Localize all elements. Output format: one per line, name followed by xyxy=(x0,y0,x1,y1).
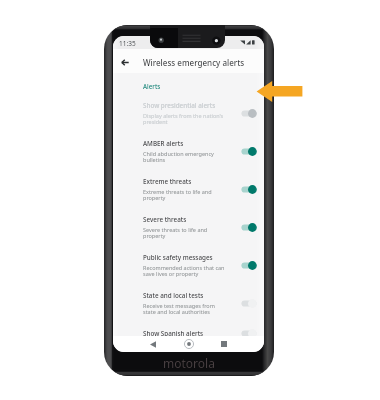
button[interactable]: Back xyxy=(144,336,161,352)
button[interactable]: Show Spanish alerts xyxy=(113,322,264,352)
button[interactable]: State and local tests xyxy=(113,284,264,322)
staticText: Severe threats to life and property xyxy=(143,226,208,240)
button[interactable]: Navigate up xyxy=(116,53,134,71)
staticText: AMBER alerts xyxy=(143,139,184,148)
staticText: Public safety messages xyxy=(143,253,213,262)
staticText: Extreme threats xyxy=(143,177,192,186)
button[interactable]: Severe threats xyxy=(113,208,264,246)
staticText: Alerts xyxy=(143,82,161,90)
staticText: Recommended actions that can save lives … xyxy=(143,264,225,278)
staticText: Wireless emergency alerts xyxy=(143,57,245,68)
staticText: Show presidential alerts xyxy=(143,101,216,110)
staticText: Show Spanish alerts xyxy=(143,329,204,338)
staticText: Severe threats xyxy=(143,215,187,224)
button[interactable]: Extreme threats xyxy=(113,170,264,208)
button[interactable]: AMBER alerts xyxy=(113,132,264,170)
staticText: Receive test messages from state and loc… xyxy=(143,302,215,316)
button[interactable]: Recent apps xyxy=(215,336,232,352)
staticText: 11:35 xyxy=(119,39,136,48)
staticText: Child abduction emergency bulletins xyxy=(143,150,214,164)
button[interactable]: Show presidential alerts xyxy=(113,94,264,132)
staticText: State and local tests xyxy=(143,291,204,300)
button[interactable]: Home xyxy=(180,336,197,352)
button[interactable]: Public safety messages xyxy=(113,246,264,284)
staticText: Extreme threats to life and property xyxy=(143,188,212,202)
staticText: motorola xyxy=(163,355,215,371)
staticText: Display alerts from the nation's preside… xyxy=(143,112,224,126)
